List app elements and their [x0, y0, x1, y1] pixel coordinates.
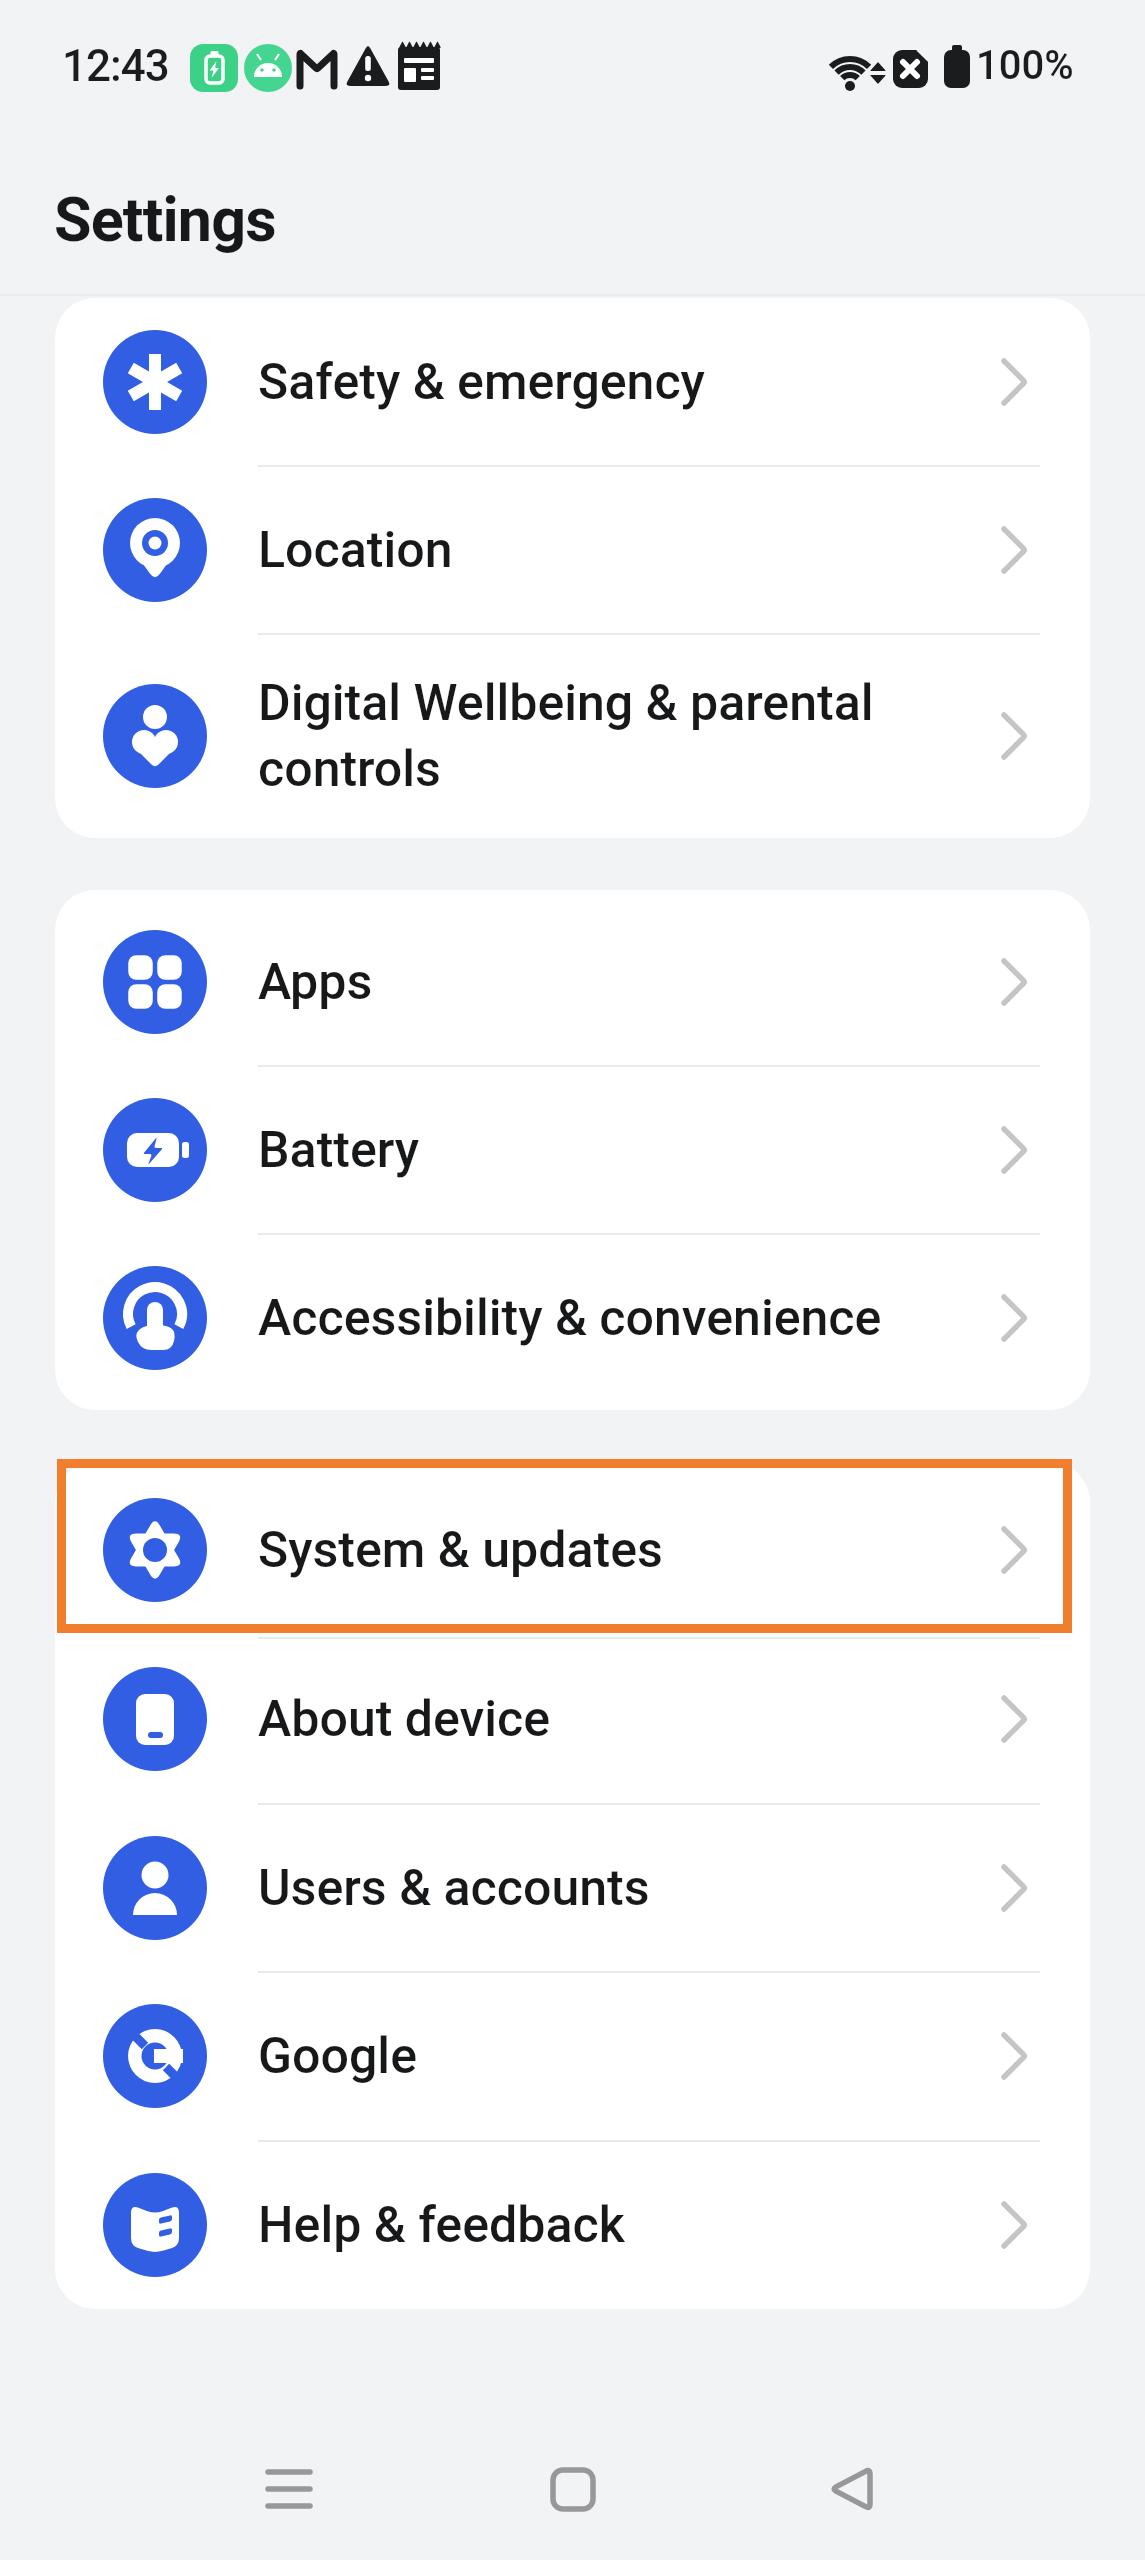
button[interactable]: Google [55, 1972, 1090, 2141]
staticText: Safety & emergency [258, 353, 705, 412]
button[interactable]: Users & accounts [55, 1804, 1090, 1972]
staticText: 12:43 [62, 40, 169, 92]
staticText: Accessibility & convenience [258, 1289, 882, 1348]
button[interactable]: Accessibility & convenience [55, 1234, 1090, 1402]
button[interactable] [239, 2439, 339, 2539]
button[interactable]: Help & feedback [55, 2141, 1090, 2309]
staticText: Battery [258, 1121, 420, 1180]
button[interactable]: Battery [55, 1066, 1090, 1234]
staticText: About device [258, 1690, 551, 1749]
staticText: Digital Wellbeing & parental controls [258, 674, 874, 798]
button[interactable]: About device [55, 1634, 1090, 1804]
button[interactable]: Location [55, 466, 1090, 634]
button[interactable] [801, 2439, 901, 2539]
button[interactable]: System & updates [55, 1466, 1090, 1634]
button[interactable]: Digital Wellbeing & parental controls [55, 634, 1090, 838]
staticText: Users & accounts [258, 1859, 650, 1918]
staticText: System & updates [258, 1521, 663, 1580]
staticText: Google [258, 2027, 417, 2086]
staticText: Location [258, 521, 453, 580]
button[interactable]: Apps [55, 898, 1090, 1066]
staticText: Apps [258, 953, 373, 1012]
staticText: 100% [976, 42, 1074, 89]
staticText: Settings [54, 184, 276, 255]
button[interactable] [523, 2439, 623, 2539]
button[interactable]: Safety & emergency [55, 298, 1090, 466]
staticText: Help & feedback [258, 2196, 625, 2255]
